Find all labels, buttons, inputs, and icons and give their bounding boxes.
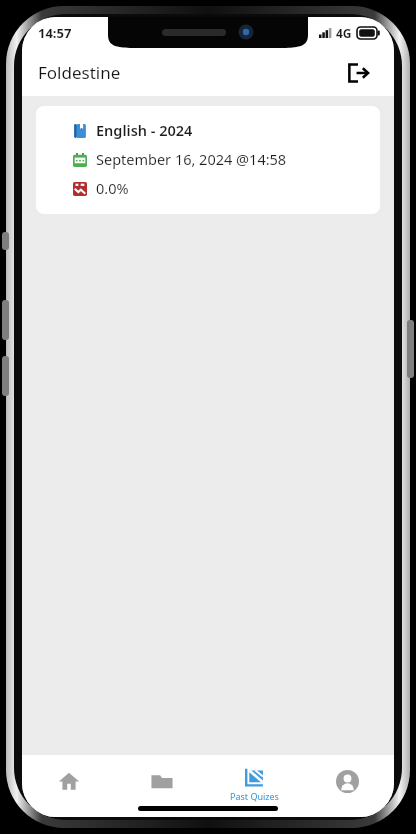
staticText: 14:57 [38,24,72,42]
staticText: September 16, 2024 @14:58 [96,149,287,169]
button[interactable]: Home [22,755,115,817]
button[interactable]: Account [301,755,394,817]
staticText: Past Quizes [230,790,279,802]
staticText: 0.0% [96,178,129,198]
button[interactable]: English - 2024 [36,106,380,214]
button[interactable]: Past Quizes [208,755,301,817]
staticText: English - 2024 [96,120,193,140]
button[interactable]: Folders [115,755,208,817]
button[interactable]: Log out [338,53,378,93]
staticText: 4G [336,25,352,41]
staticText: Foldestine [38,61,121,84]
